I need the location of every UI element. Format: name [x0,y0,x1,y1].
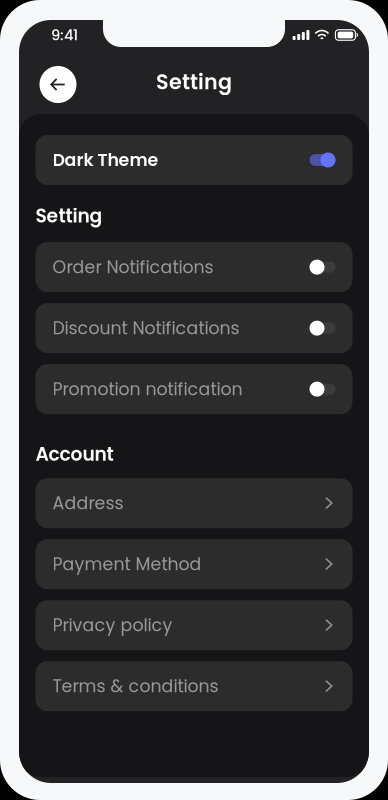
staticText: Dark Theme [52,148,158,172]
button[interactable]: Order Notifications [35,242,352,292]
button[interactable]: Dark Theme [35,135,352,185]
staticText: Account [35,441,113,467]
button[interactable]: Promotion notification [35,364,352,414]
staticText: Promotion notification [52,377,242,401]
staticText: Privacy policy [52,613,172,637]
button[interactable]: Address [35,478,352,528]
staticText: Address [52,491,123,515]
staticText: 9:41 [51,25,78,45]
button[interactable]: Privacy policy [35,600,352,650]
button[interactable]: Terms & conditions [35,661,352,711]
staticText: Terms & conditions [52,674,218,698]
button[interactable]: Payment Method [35,539,352,589]
button[interactable]: Discount Notifications [35,303,352,353]
staticText: Order Notifications [52,255,213,279]
staticText: Setting [35,203,102,229]
staticText: Setting [156,67,232,96]
staticText: Discount Notifications [52,316,239,340]
button[interactable]: Back [39,66,76,103]
staticText: Payment Method [52,552,201,576]
